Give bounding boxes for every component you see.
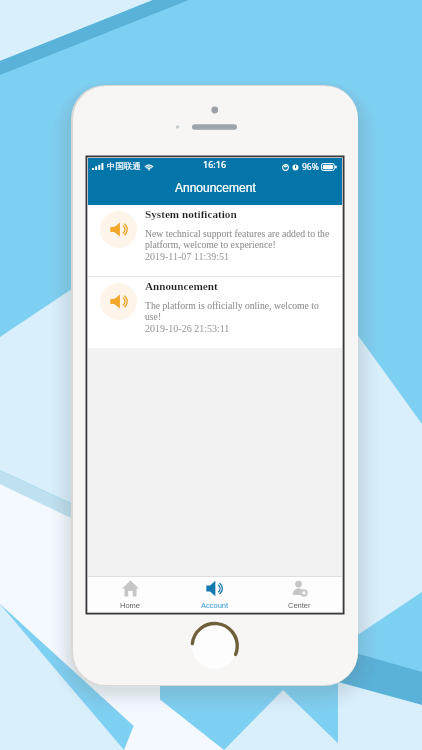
- staticText: 96%: [302, 161, 319, 173]
- staticText: 2019-10-26 21:53:11: [145, 323, 230, 334]
- staticText: System notification: [145, 208, 237, 220]
- staticText: 2019-11-07 11:39:51: [145, 251, 229, 262]
- button[interactable]: Announcement: [88, 277, 342, 348]
- staticText: 16:16: [203, 158, 227, 170]
- staticText: 中国联通: [107, 161, 141, 172]
- button[interactable]: Home: [88, 577, 172, 612]
- button[interactable]: Center: [257, 577, 342, 612]
- button[interactable]: Account: [172, 577, 257, 612]
- staticText: Account: [201, 601, 229, 609]
- staticText: Center: [288, 601, 311, 609]
- staticText: The platform is officially online, welco…: [145, 300, 319, 322]
- button[interactable]: System notification: [88, 205, 342, 276]
- staticText: Home: [120, 601, 141, 609]
- staticText: New technical support features are added…: [145, 228, 330, 250]
- staticText: Announcement: [175, 181, 256, 194]
- staticText: Announcement: [145, 280, 218, 292]
